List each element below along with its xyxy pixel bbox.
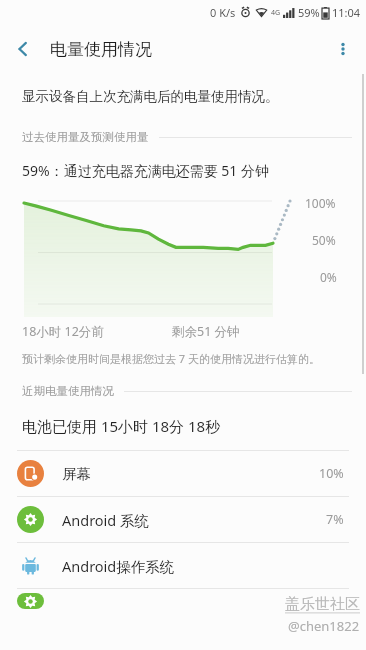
- staticText: 59%：通过充电器充满电还需要 51 分钟: [22, 161, 269, 180]
- staticText: 屏幕: [62, 465, 91, 483]
- staticText: 7%: [326, 511, 344, 528]
- staticText: 过去使用量及预测使用量: [22, 130, 149, 144]
- button[interactable]: 屏幕: [0, 451, 366, 496]
- staticText: 4G: [271, 8, 281, 18]
- staticText: 50%: [312, 232, 336, 248]
- staticText: 11:04: [332, 5, 361, 20]
- staticText: 0 K/s: [210, 5, 236, 20]
- button[interactable]: Android操作系统: [0, 543, 366, 588]
- staticText: 盖乐世社区: [285, 595, 360, 614]
- staticText: @chen1822: [288, 617, 360, 635]
- staticText: 剩余51 分钟: [172, 323, 240, 340]
- staticText: 0%: [320, 269, 337, 285]
- staticText: 电池已使用 15小时 18分 18秒: [22, 416, 221, 436]
- staticText: 显示设备自上次充满电后的电量使用情况。: [22, 88, 279, 105]
- button[interactable]: More options: [320, 26, 366, 72]
- staticText: 近期电量使用情况: [22, 384, 114, 398]
- staticText: Android 系统: [62, 510, 150, 530]
- staticText: 59%: [298, 5, 320, 20]
- button[interactable]: Back: [0, 26, 46, 72]
- staticText: Android操作系统: [62, 556, 175, 576]
- staticText: 电量使用情况: [50, 39, 152, 60]
- staticText: 10%: [319, 465, 344, 482]
- button[interactable]: Android 系统: [0, 497, 366, 542]
- staticText: 预计剩余使用时间是根据您过去 7 天的使用情况进行估算的。: [22, 351, 321, 366]
- staticText: 18小时 12分前: [22, 323, 104, 340]
- staticText: 100%: [305, 195, 336, 211]
